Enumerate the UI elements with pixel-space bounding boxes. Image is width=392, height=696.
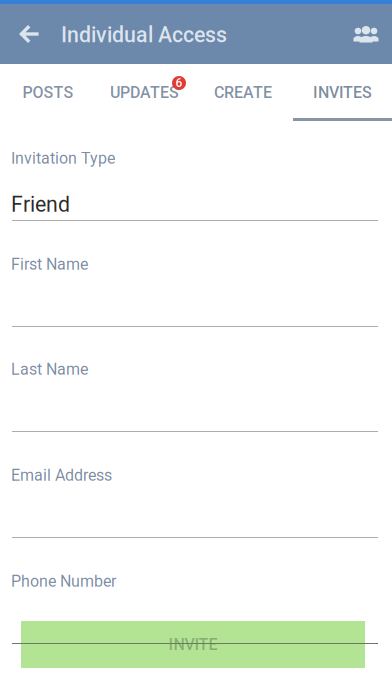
staticText: Invitation Type bbox=[11, 149, 115, 168]
staticText: Last Name bbox=[11, 360, 88, 379]
staticText: INVITE bbox=[168, 635, 217, 654]
staticText: Email Address bbox=[11, 466, 112, 485]
button[interactable]: INVITES bbox=[293, 63, 392, 121]
button[interactable]: Members bbox=[340, 4, 392, 64]
button[interactable]: POSTS bbox=[0, 63, 96, 121]
staticText: 6 bbox=[175, 76, 182, 90]
staticText: First Name bbox=[11, 255, 88, 274]
staticText: UPDATES bbox=[110, 83, 179, 102]
staticText: Individual Access bbox=[61, 22, 227, 47]
staticText: INVITES bbox=[313, 83, 372, 102]
button[interactable]: CREATE bbox=[193, 63, 293, 121]
button[interactable]: UPDATES bbox=[96, 63, 193, 121]
button[interactable]: INVITE bbox=[21, 621, 365, 668]
staticText: Friend bbox=[11, 192, 70, 217]
staticText: Phone Number bbox=[11, 572, 116, 591]
staticText: POSTS bbox=[22, 83, 73, 102]
staticText: CREATE bbox=[214, 83, 272, 102]
button[interactable]: Back bbox=[0, 4, 58, 64]
